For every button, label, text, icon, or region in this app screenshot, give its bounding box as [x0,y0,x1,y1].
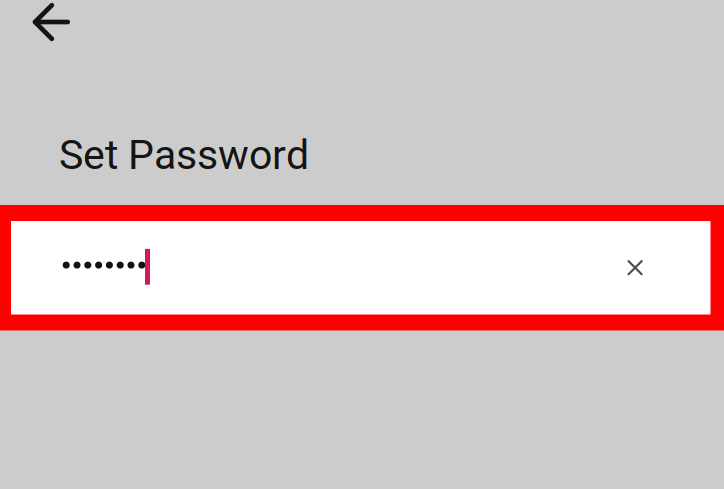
button[interactable]: Password [11,221,710,314]
staticText: Set Password [59,131,309,179]
button[interactable]: Clear text [614,247,656,289]
button[interactable]: Back [29,0,73,44]
